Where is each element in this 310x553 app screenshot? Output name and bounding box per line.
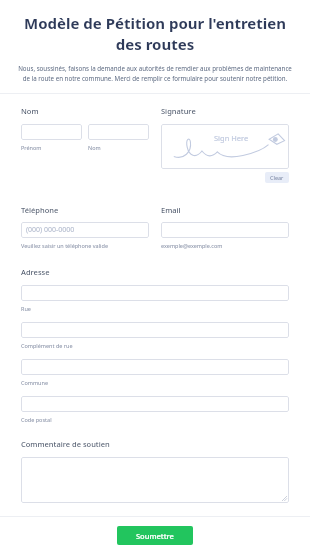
staticText: Complément de rue	[21, 342, 73, 349]
button[interactable]	[21, 396, 289, 412]
button[interactable]	[161, 222, 289, 238]
staticText: Clear	[270, 174, 284, 181]
button[interactable]	[21, 457, 289, 503]
staticText: Soumettre	[136, 531, 174, 541]
staticText: Veuillez saisir un téléphone valide	[21, 242, 108, 249]
button[interactable]	[21, 322, 289, 338]
staticText: Adresse	[21, 267, 50, 277]
staticText: Commentaire de soutien	[21, 439, 110, 449]
button[interactable]	[21, 359, 289, 375]
staticText: Code postal	[21, 416, 52, 423]
staticText: Email	[161, 205, 181, 215]
button[interactable]: Soumettre	[117, 526, 193, 545]
staticText: (000) 000-0000	[26, 225, 75, 235]
staticText: Modèle de Pétition pour l'entretien des …	[20, 13, 290, 55]
staticText: Nous, soussinés, faisons la demande aux …	[18, 64, 292, 83]
staticText: Signature	[161, 106, 196, 116]
button[interactable]: Clear	[265, 172, 289, 183]
button[interactable]: (000) 000-0000	[21, 222, 149, 238]
staticText: Commune	[21, 379, 48, 386]
button[interactable]	[88, 124, 149, 140]
staticText: Rue	[21, 305, 31, 312]
button[interactable]	[21, 285, 289, 301]
staticText: Téléphone	[21, 205, 59, 215]
button[interactable]: Signature pad	[161, 124, 289, 169]
staticText: Sign Here	[214, 133, 249, 143]
staticText: Prénom	[21, 144, 42, 151]
button[interactable]	[21, 124, 82, 140]
staticText: Nom	[21, 106, 39, 116]
staticText: Nom	[88, 144, 101, 151]
staticText: exemple@exemple.com	[161, 242, 223, 249]
